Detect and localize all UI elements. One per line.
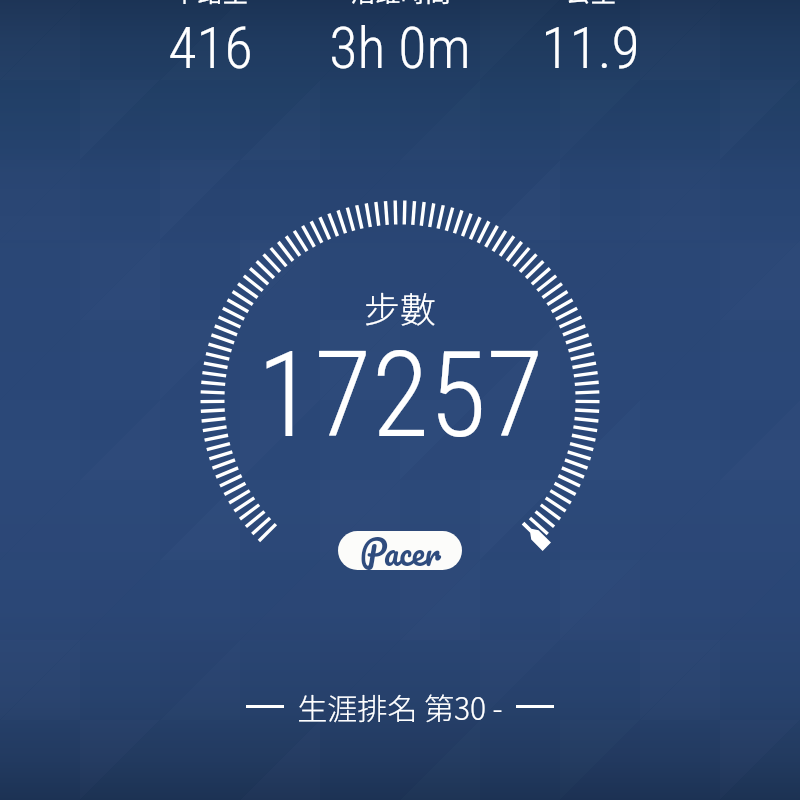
staticText: 活躍時間 bbox=[350, 0, 451, 9]
button[interactable]: 卡路里 bbox=[115, 0, 305, 82]
staticText: 生涯排名 第30 - bbox=[284, 685, 516, 728]
button[interactable]: 公里 bbox=[495, 0, 685, 82]
staticText: 11.9 bbox=[541, 14, 640, 82]
staticText: 公里 bbox=[565, 0, 616, 9]
button[interactable]: 活躍時間 bbox=[305, 0, 495, 82]
staticText: 3h 0m bbox=[329, 14, 471, 82]
staticText: 卡路里 bbox=[172, 0, 248, 9]
staticText: Pacer bbox=[360, 523, 441, 581]
button[interactable] bbox=[338, 531, 462, 570]
staticText: 步數 bbox=[364, 281, 437, 333]
staticText: 17257 bbox=[257, 327, 544, 465]
staticText: 416 bbox=[168, 14, 253, 82]
